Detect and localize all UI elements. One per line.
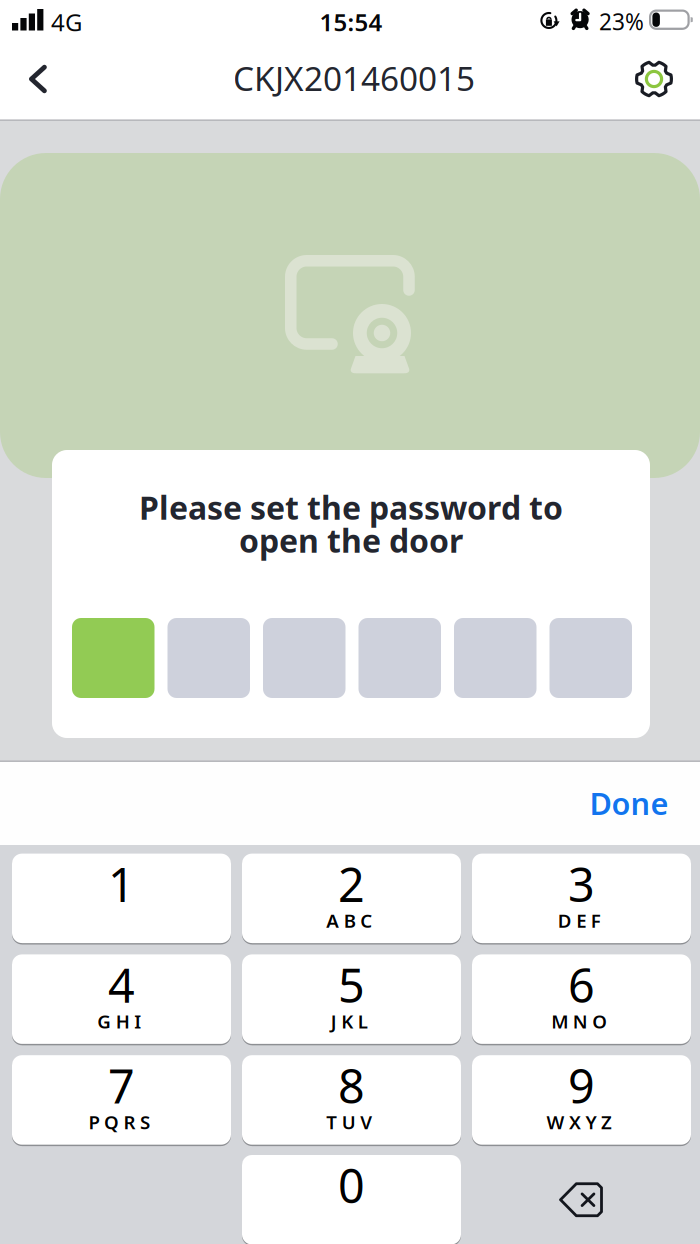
staticText: 3 — [568, 853, 595, 915]
staticText: Done — [589, 783, 668, 823]
staticText: 15:54 — [319, 6, 382, 38]
staticText: WXYZ — [546, 1110, 612, 1134]
staticText: JKL — [331, 1009, 368, 1034]
button[interactable]: 1 — [12, 854, 231, 944]
staticText: 9 — [568, 1054, 595, 1116]
button[interactable]: Back — [7, 42, 69, 116]
button[interactable]: Settings — [623, 42, 685, 116]
staticText: TUV — [326, 1110, 372, 1134]
staticText: ABC — [326, 908, 372, 933]
button[interactable]: 9 — [472, 1055, 691, 1146]
staticText: PQRS — [88, 1110, 150, 1134]
staticText: 4G — [51, 6, 82, 38]
staticText: 8 — [338, 1054, 365, 1116]
staticText: 23% — [599, 6, 644, 37]
staticText: 0 — [338, 1154, 365, 1216]
staticText: 5 — [338, 954, 365, 1016]
button[interactable]: 5 — [242, 954, 461, 1045]
staticText: DEF — [558, 908, 601, 933]
staticText: GHI — [97, 1009, 141, 1034]
staticText: MNO — [551, 1009, 607, 1034]
staticText: 4 — [108, 954, 135, 1016]
button[interactable]: 3 — [472, 854, 691, 944]
button[interactable]: Done — [570, 767, 688, 839]
staticText: 7 — [108, 1054, 135, 1116]
button[interactable]: 0 — [242, 1155, 461, 1244]
button[interactable]: 7 — [12, 1055, 231, 1146]
staticText: CKJX201460015 — [233, 56, 475, 100]
staticText: 6 — [568, 954, 595, 1016]
button[interactable]: 6 — [472, 954, 691, 1045]
staticText: open the door — [239, 519, 463, 561]
staticText: 2 — [338, 853, 365, 915]
button[interactable]: 8 — [242, 1055, 461, 1146]
button[interactable]: 4 — [12, 954, 231, 1045]
button[interactable]: Delete — [472, 1155, 691, 1244]
staticText: 1 — [108, 853, 135, 915]
staticText: Please set the password to — [139, 486, 563, 528]
button[interactable]: 2 — [242, 854, 461, 944]
